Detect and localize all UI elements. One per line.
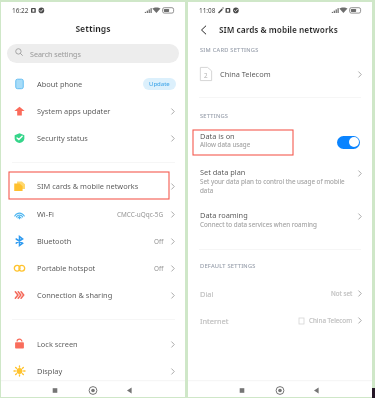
staticText: Set data plan bbox=[200, 167, 246, 177]
button[interactable]: Wi-Fi bbox=[1, 201, 185, 227]
staticText: 16:22 bbox=[12, 6, 29, 15]
staticText: Set your data plan to control the usage … bbox=[200, 177, 345, 193]
button[interactable]: Dial bbox=[188, 287, 372, 300]
staticText: Security status bbox=[37, 133, 88, 143]
button[interactable]: China Telecom bbox=[188, 61, 372, 87]
staticText: Off bbox=[154, 264, 164, 273]
staticText: Connection & sharing bbox=[37, 290, 113, 300]
staticText: SETTINGS bbox=[200, 112, 229, 120]
staticText: Dial bbox=[200, 289, 214, 299]
staticText: System apps updater bbox=[37, 106, 111, 116]
staticText: Data is on bbox=[200, 131, 235, 141]
staticText: Search settings bbox=[30, 49, 81, 59]
staticText: Lock screen bbox=[37, 339, 78, 349]
staticText: China Telecom bbox=[220, 69, 271, 79]
staticText: DEFAULT SETTINGS bbox=[200, 262, 256, 270]
staticText: Internet bbox=[200, 316, 229, 326]
staticText: Connect to data services when roaming bbox=[200, 220, 317, 229]
staticText: About phone bbox=[37, 79, 83, 89]
staticText: Data roaming bbox=[200, 210, 248, 220]
button[interactable]: Back bbox=[194, 21, 212, 39]
staticText: 2 bbox=[204, 71, 208, 79]
staticText: Portable hotspot bbox=[37, 263, 96, 273]
staticText: Settings bbox=[1, 23, 185, 35]
staticText: Wi-Fi bbox=[37, 209, 54, 219]
button[interactable]: Lock screen bbox=[1, 331, 185, 357]
button[interactable]: System apps updater bbox=[1, 98, 185, 124]
staticText: Not set bbox=[331, 289, 353, 298]
staticText: Display bbox=[37, 366, 63, 376]
staticText: Bluetooth bbox=[37, 236, 72, 246]
button[interactable]: Data roaming bbox=[188, 210, 372, 236]
button[interactable]: Internet bbox=[188, 314, 372, 327]
staticText: SIM cards & mobile networks bbox=[219, 24, 338, 35]
button[interactable]: About phone bbox=[1, 71, 185, 97]
staticText: China Telecom bbox=[309, 316, 353, 325]
staticText: Update bbox=[149, 80, 170, 88]
staticText: Off bbox=[154, 237, 164, 246]
button[interactable]: Connection & sharing bbox=[1, 282, 185, 308]
button[interactable]: Bluetooth bbox=[1, 228, 185, 254]
button[interactable]: SIM cards & mobile networks bbox=[1, 173, 185, 199]
button[interactable]: Display bbox=[1, 358, 185, 384]
button[interactable]: Security status bbox=[1, 125, 185, 151]
button[interactable]: Set data plan bbox=[188, 167, 372, 193]
staticText: SIM CARD SETTINGS bbox=[200, 46, 259, 54]
button[interactable]: Data is on bbox=[188, 130, 372, 154]
staticText: 11:08 bbox=[199, 6, 216, 15]
button[interactable]: Search settings bbox=[7, 44, 179, 63]
button[interactable]: Portable hotspot bbox=[1, 255, 185, 281]
staticText: Allow data usage bbox=[200, 140, 251, 149]
staticText: SIM cards & mobile networks bbox=[37, 181, 139, 191]
staticText: CMCC-uQqc-5G bbox=[117, 210, 164, 219]
